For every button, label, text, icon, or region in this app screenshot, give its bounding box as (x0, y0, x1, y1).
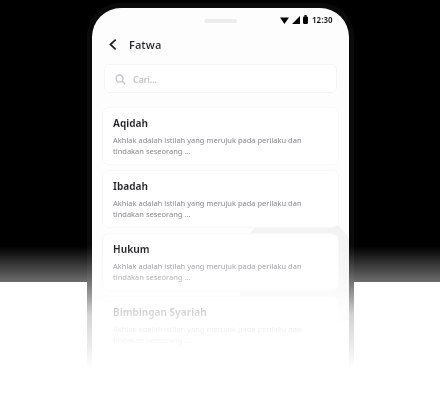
button[interactable]: Bimbingan Syariah (102, 296, 339, 354)
staticText: Cari... (133, 73, 158, 85)
staticText: Akhlak adalah istilah yang merujuk pada … (113, 198, 328, 219)
staticText: Bimbingan Syariah (113, 305, 207, 319)
staticText: Akhlak adalah istilah yang merujuk pada … (113, 261, 328, 282)
button[interactable]: Aqidah (102, 107, 339, 165)
staticText: 12:30 (312, 14, 333, 25)
button[interactable]: Ibadah (102, 170, 339, 228)
staticText: Akhlak adalah istilah yang merujuk pada … (113, 135, 328, 156)
staticText: Ibadah (113, 179, 149, 193)
staticText: Hukum (113, 242, 150, 256)
button[interactable]: Cari... (104, 64, 337, 93)
staticText: Fatwa (129, 37, 162, 52)
staticText: Aqidah (113, 116, 149, 130)
button[interactable]: Back (103, 34, 123, 54)
button[interactable]: Hukum (102, 233, 339, 291)
